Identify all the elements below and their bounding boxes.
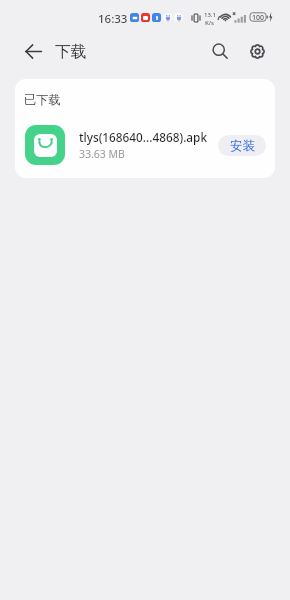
- staticText: 已下载: [24, 92, 61, 107]
- staticText: tlys(168640...4868).apk: [79, 129, 207, 145]
- button[interactable]: Settings: [242, 36, 272, 66]
- button[interactable]: Search: [205, 36, 235, 66]
- staticText: 100: [252, 13, 265, 23]
- button[interactable]: Back: [17, 35, 49, 67]
- button[interactable]: 安装: [218, 135, 266, 156]
- staticText: 安装: [230, 138, 255, 154]
- button[interactable]: tlys(168640...4868).apk: [15, 120, 275, 170]
- staticText: K/s: [205, 19, 215, 27]
- staticText: 下载: [55, 42, 87, 62]
- staticText: 13.1: [204, 11, 216, 19]
- staticText: 33.63 MB: [79, 147, 125, 161]
- staticText: 16:33: [98, 11, 128, 27]
